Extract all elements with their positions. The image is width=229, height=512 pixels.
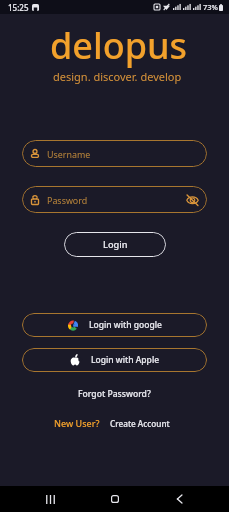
staticText: Login (103, 238, 128, 251)
button[interactable]: Username (22, 140, 207, 167)
button[interactable]: Back (165, 486, 193, 512)
button[interactable]: Login with Apple (22, 348, 207, 372)
staticText: 73% (203, 2, 218, 12)
button[interactable]: New User? (54, 417, 100, 429)
staticText: Password (47, 194, 88, 206)
button[interactable]: Forgot Password? (78, 388, 151, 400)
staticText: design. discover. develop (53, 69, 182, 84)
button[interactable]: Password (22, 186, 207, 213)
button[interactable]: Login with google (22, 313, 207, 337)
staticText: delopus (50, 21, 188, 70)
staticText: Login with Apple (91, 354, 160, 366)
button[interactable]: Login (64, 232, 166, 257)
button[interactable]: Show password (186, 194, 199, 206)
staticText: Username (47, 148, 91, 160)
staticText: 15:25 (8, 2, 29, 13)
button[interactable]: Recent apps (36, 486, 64, 512)
staticText: Login with google (89, 319, 162, 331)
button[interactable]: Home (101, 486, 129, 512)
button[interactable]: Create Account (110, 418, 170, 429)
